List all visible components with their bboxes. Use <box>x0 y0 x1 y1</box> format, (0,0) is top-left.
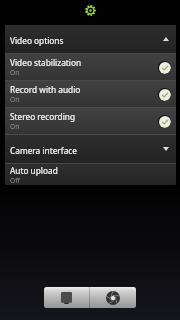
button[interactable]: Camera shutter <box>90 287 136 308</box>
staticText: Video stabilization <box>10 57 82 68</box>
staticText: Record with audio <box>10 84 81 95</box>
staticText: On <box>10 68 20 77</box>
button[interactable]: Auto upload <box>5 164 176 185</box>
staticText: Off <box>10 176 20 185</box>
staticText: Stereo recording <box>10 111 76 122</box>
button[interactable]: Video stabilization <box>5 54 176 80</box>
button[interactable]: Video options <box>5 25 176 53</box>
staticText: Video options <box>10 35 64 46</box>
button[interactable]: Stereo recording <box>5 108 176 134</box>
staticText: Auto upload <box>10 165 58 176</box>
button[interactable]: Record with audio <box>5 81 176 107</box>
staticText: On <box>10 95 20 104</box>
staticText: Camera interface <box>10 145 77 156</box>
button[interactable]: Settings <box>82 2 98 18</box>
staticText: On <box>10 122 20 131</box>
button[interactable]: Video mode <box>44 287 89 308</box>
button[interactable]: Camera interface <box>5 135 176 163</box>
